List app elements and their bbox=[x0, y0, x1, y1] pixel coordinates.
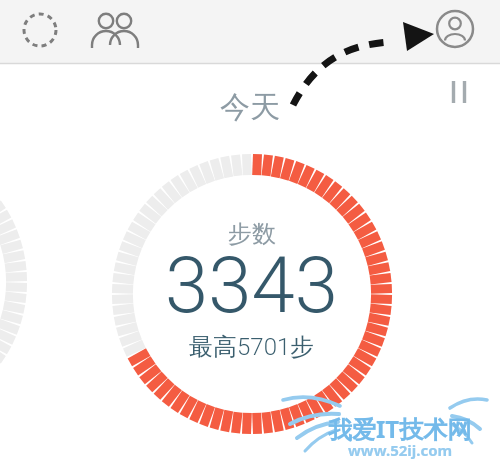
staticText: 我爱IT技术网 bbox=[328, 412, 472, 445]
staticText: www.52ij.com bbox=[348, 440, 453, 460]
button[interactable] bbox=[92, 10, 138, 56]
staticText: 今天 bbox=[220, 88, 280, 126]
staticText: 步数 bbox=[228, 219, 276, 249]
staticText: 最高5701步 bbox=[189, 332, 315, 362]
button[interactable] bbox=[22, 12, 58, 48]
staticText: 3343 bbox=[165, 240, 339, 331]
button[interactable] bbox=[436, 10, 474, 48]
button[interactable] bbox=[446, 76, 472, 108]
